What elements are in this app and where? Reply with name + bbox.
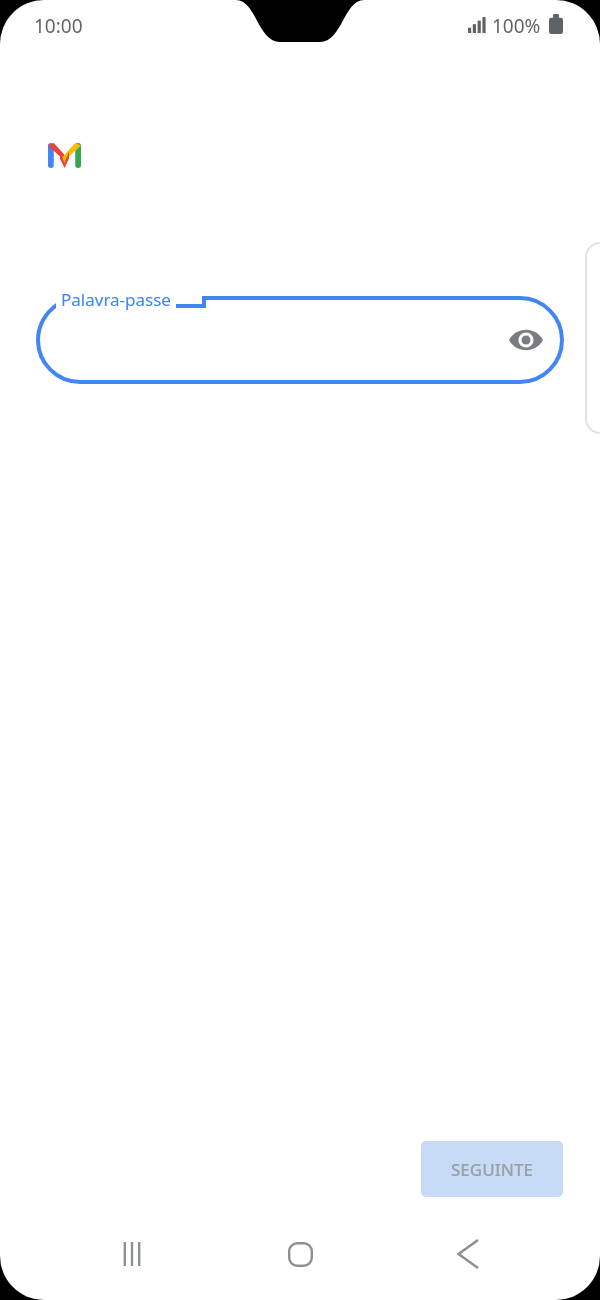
button[interactable]: SEGUINTE	[421, 1141, 563, 1197]
button[interactable]: Início	[264, 1218, 336, 1290]
staticText: SEGUINTE	[451, 1158, 533, 1181]
button[interactable]: Voltar	[432, 1218, 504, 1290]
button[interactable]: Mostrar palavra-passe	[502, 316, 550, 364]
button[interactable]: Recentes	[96, 1218, 168, 1290]
button[interactable]: Mostrar palavra-passe	[36, 296, 564, 384]
staticText: 10:00	[34, 13, 83, 39]
staticText: Palavra-passe	[61, 288, 171, 311]
staticText: 100%	[492, 13, 541, 39]
